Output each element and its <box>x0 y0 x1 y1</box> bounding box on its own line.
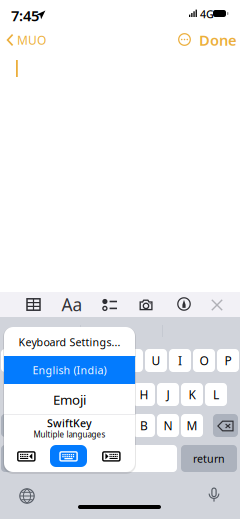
button[interactable]: space <box>33 445 177 472</box>
staticText: Emoji <box>53 391 86 408</box>
staticText: U <box>151 352 160 368</box>
button[interactable]: Text format <box>53 292 91 317</box>
staticText: SwiftKey <box>47 416 92 430</box>
button[interactable]: Back to MUO <box>0 30 44 50</box>
staticText: Y <box>128 352 135 368</box>
button[interactable]: Next keyboard <box>13 482 41 510</box>
button[interactable]: Shift <box>1 414 26 437</box>
staticText: L <box>213 386 219 402</box>
button[interactable]: Q <box>1 349 23 372</box>
button[interactable]: G <box>109 383 131 406</box>
button[interactable]: V <box>109 414 131 437</box>
button[interactable]: Insert photo <box>127 292 165 317</box>
button[interactable]: return <box>181 445 237 472</box>
staticText: I <box>178 352 182 368</box>
staticText: R <box>80 352 87 368</box>
staticText: T <box>104 352 111 368</box>
staticText: Done <box>199 30 237 50</box>
button[interactable]: Y <box>121 349 143 372</box>
button[interactable]: English (India) <box>4 356 135 384</box>
staticText: J <box>166 386 169 402</box>
staticText: N <box>163 417 172 433</box>
button[interactable]: Checklist <box>91 292 129 317</box>
button[interactable]: B <box>133 414 155 437</box>
button[interactable]: O <box>193 349 215 372</box>
staticText: Z <box>44 417 51 433</box>
button[interactable]: C <box>85 414 107 437</box>
button[interactable]: F <box>85 383 107 406</box>
staticText: X <box>68 417 75 433</box>
button[interactable]: T <box>97 349 119 372</box>
button[interactable]: J <box>157 383 179 406</box>
staticText: E <box>56 352 63 368</box>
button[interactable]: K <box>181 383 203 406</box>
button[interactable]: N <box>157 414 179 437</box>
button[interactable]: I <box>169 349 191 372</box>
button[interactable]: R <box>73 349 95 372</box>
staticText: D <box>67 386 76 402</box>
staticText: C <box>92 417 100 433</box>
button[interactable]: More options <box>176 31 193 48</box>
staticText: M <box>186 417 197 433</box>
staticText: H <box>139 386 148 402</box>
staticText: return <box>193 451 225 466</box>
button[interactable]: P <box>217 349 239 372</box>
button[interactable]: M <box>181 414 203 437</box>
staticText: Q <box>7 352 16 368</box>
staticText: 7:45 <box>11 6 39 25</box>
button[interactable]: E <box>49 349 71 372</box>
staticText: 4G <box>200 7 214 21</box>
button[interactable]: X <box>61 414 83 437</box>
button[interactable]: Delete <box>213 414 238 437</box>
button[interactable]: D <box>61 383 83 406</box>
button[interactable]: W <box>25 349 47 372</box>
button[interactable]: L <box>205 383 227 406</box>
button[interactable]: Z <box>37 414 59 437</box>
staticText: B <box>140 417 148 433</box>
button[interactable]: A <box>13 383 35 406</box>
staticText: 123 <box>7 451 25 466</box>
button[interactable]: H <box>133 383 155 406</box>
button[interactable]: Close keyboard <box>200 292 234 317</box>
button[interactable]: Done <box>199 31 231 49</box>
staticText: Multiple languages <box>33 429 105 440</box>
button[interactable]: 123 <box>1 445 31 472</box>
button[interactable]: U <box>145 349 167 372</box>
button[interactable]: SwiftKey <box>4 415 135 443</box>
staticText: MUO <box>17 32 46 48</box>
button[interactable]: Emoji <box>4 386 135 413</box>
button[interactable]: Markup <box>166 292 202 317</box>
button[interactable]: Dictate <box>202 482 226 510</box>
staticText: O <box>199 352 208 368</box>
staticText: Aa <box>61 293 82 316</box>
button[interactable]: Dock keyboard right <box>97 445 127 467</box>
staticText: K <box>188 386 195 402</box>
button[interactable]: Keyboard Settings <box>4 328 135 356</box>
staticText: P <box>224 352 231 368</box>
staticText: English (India) <box>32 363 106 377</box>
button[interactable]: Full keyboard <box>50 445 87 467</box>
staticText: Keyboard Settings... <box>18 335 120 349</box>
staticText: W <box>30 352 41 368</box>
button[interactable]: Insert table <box>14 292 52 317</box>
button[interactable]: S <box>37 383 59 406</box>
button[interactable]: Dock keyboard left <box>12 445 42 467</box>
